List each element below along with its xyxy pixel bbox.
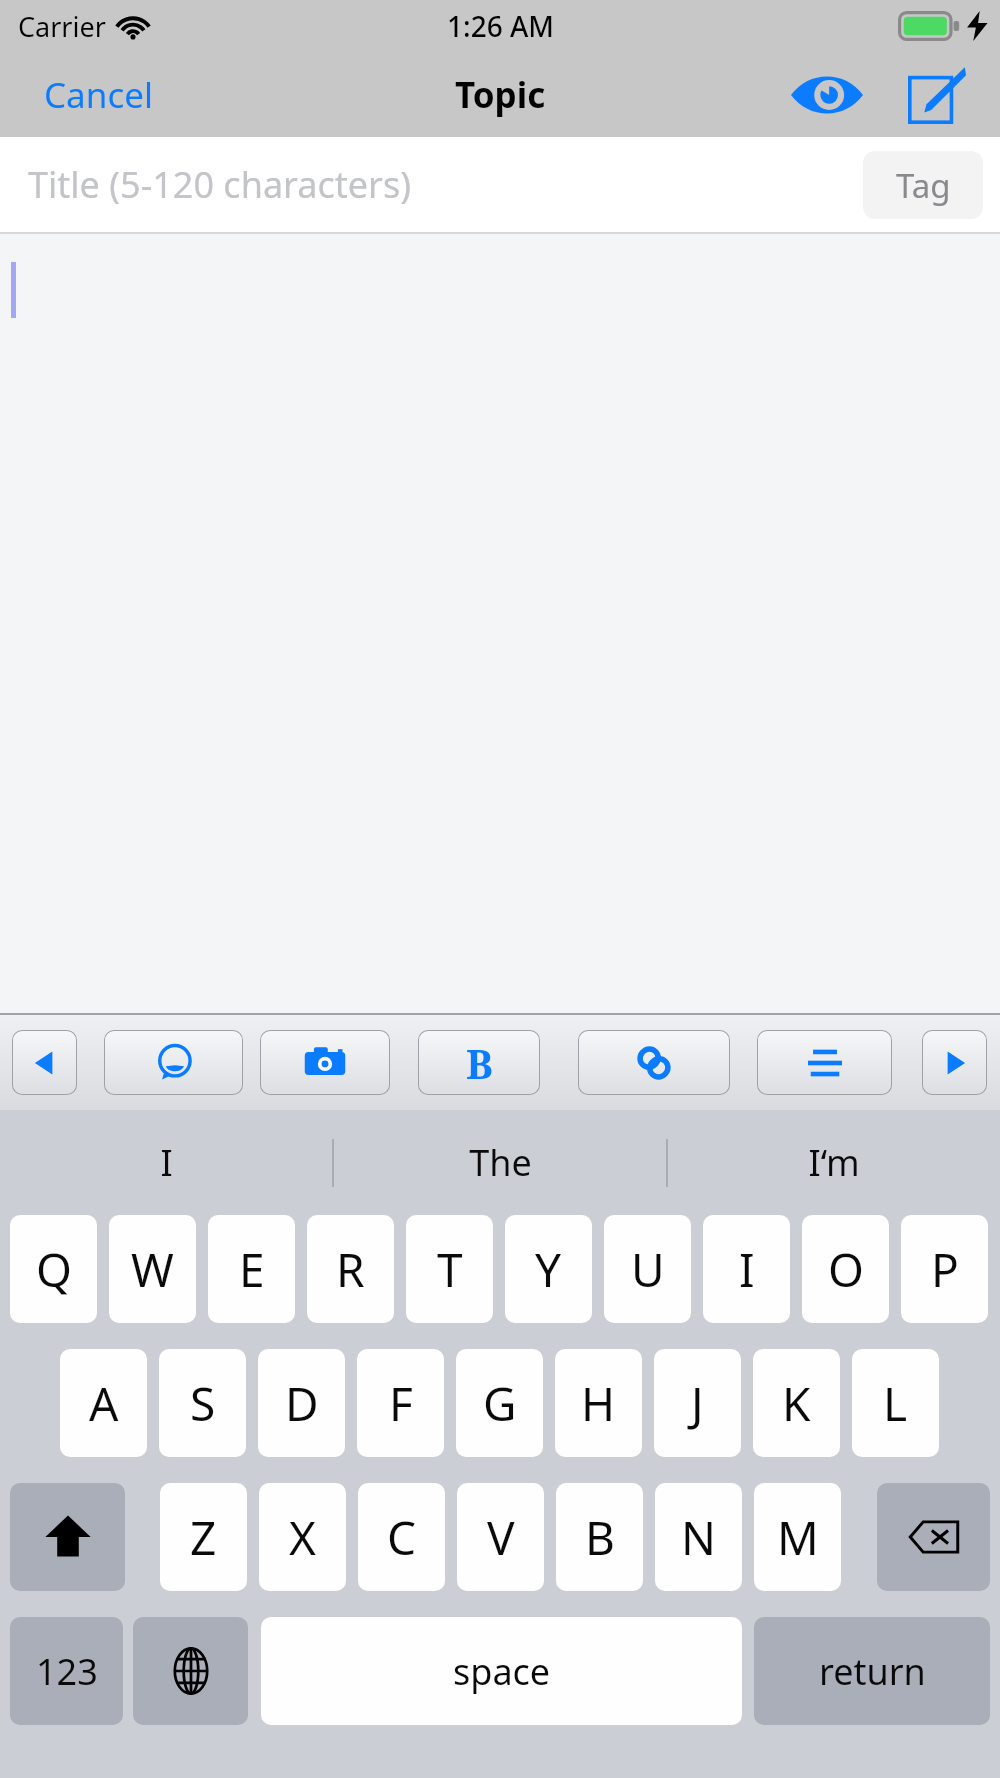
button[interactable]: Format action [260,1030,390,1095]
staticText: Q [36,1238,72,1301]
button[interactable]: Y [505,1215,592,1323]
button[interactable]: R [307,1215,394,1323]
button[interactable]: M [754,1483,841,1591]
staticText: Topic [455,71,546,119]
staticText: S [190,1372,216,1435]
staticText: B [466,1036,493,1090]
staticText: Cancel [44,71,153,119]
staticText: R [336,1238,365,1301]
button[interactable]: Format action [104,1030,243,1095]
staticText: O [828,1238,864,1301]
button[interactable]: Z [160,1483,247,1591]
staticText: Tag [896,163,951,208]
button[interactable]: F [357,1349,444,1457]
button[interactable]: C [358,1483,445,1591]
button[interactable]: O [802,1215,889,1323]
staticText: W [131,1238,174,1301]
staticText: space [453,1647,551,1696]
staticText: F [389,1372,413,1435]
staticText: L [883,1372,908,1435]
staticText: P [931,1238,959,1301]
button[interactable]: Format action [757,1030,892,1095]
button[interactable]: B [556,1483,643,1591]
button[interactable]: N [655,1483,742,1591]
staticText: D [285,1372,319,1435]
staticText: K [782,1372,811,1435]
button[interactable]: J [654,1349,741,1457]
button[interactable]: Cancel [30,61,167,129]
button[interactable]: space [261,1617,742,1725]
button[interactable]: Compose [896,59,978,131]
button[interactable]: I [703,1215,790,1323]
staticText: C [387,1506,417,1569]
button[interactable]: G [456,1349,543,1457]
staticText: E [239,1238,265,1301]
staticText: Carrier [18,8,106,45]
staticText: T [437,1238,463,1301]
staticText: The [469,1138,532,1187]
staticText: M [777,1506,819,1569]
button[interactable]: Q [10,1215,97,1323]
button[interactable]: The [334,1110,666,1215]
button[interactable]: S [159,1349,246,1457]
button[interactable]: Tag [863,151,983,219]
button[interactable]: W [109,1215,196,1323]
staticText: G [483,1372,517,1435]
button[interactable]: B [418,1030,540,1095]
staticText: 1:26 AM [447,7,554,45]
button[interactable]: Key [877,1483,990,1591]
staticText: Y [535,1238,562,1301]
staticText: V [487,1506,515,1569]
button[interactable]: I [0,1110,332,1215]
button[interactable]: T [406,1215,493,1323]
button[interactable]: D [258,1349,345,1457]
button[interactable]: P [901,1215,988,1323]
staticText: Z [190,1506,217,1569]
button[interactable]: A [60,1349,147,1457]
button[interactable]: Format action [922,1030,987,1095]
button[interactable]: Preview [784,60,870,130]
button[interactable]: Key [133,1617,248,1725]
button[interactable]: E [208,1215,295,1323]
staticText: N [681,1506,716,1569]
button[interactable]: 123 [10,1617,123,1725]
button[interactable]: Format action [12,1030,77,1095]
staticText: J [691,1372,704,1435]
staticText: X [289,1506,316,1569]
staticText: H [581,1372,616,1435]
button[interactable]: L [852,1349,939,1457]
staticText: I [739,1238,755,1301]
staticText: return [819,1647,926,1696]
staticText: B [585,1506,615,1569]
staticText: I‘m [808,1138,860,1187]
staticText: A [89,1372,119,1435]
button[interactable]: X [259,1483,346,1591]
button[interactable]: Format action [578,1030,730,1095]
staticText: Title (5-120 characters) [28,160,411,209]
button[interactable]: I‘m [668,1110,1000,1215]
button[interactable]: K [753,1349,840,1457]
button[interactable]: return [754,1617,990,1725]
button[interactable]: U [604,1215,691,1323]
button[interactable]: H [555,1349,642,1457]
staticText: U [631,1238,665,1301]
staticText: I [160,1138,173,1187]
button[interactable]: V [457,1483,544,1591]
staticText: 123 [36,1647,98,1696]
button[interactable]: Key [10,1483,125,1591]
